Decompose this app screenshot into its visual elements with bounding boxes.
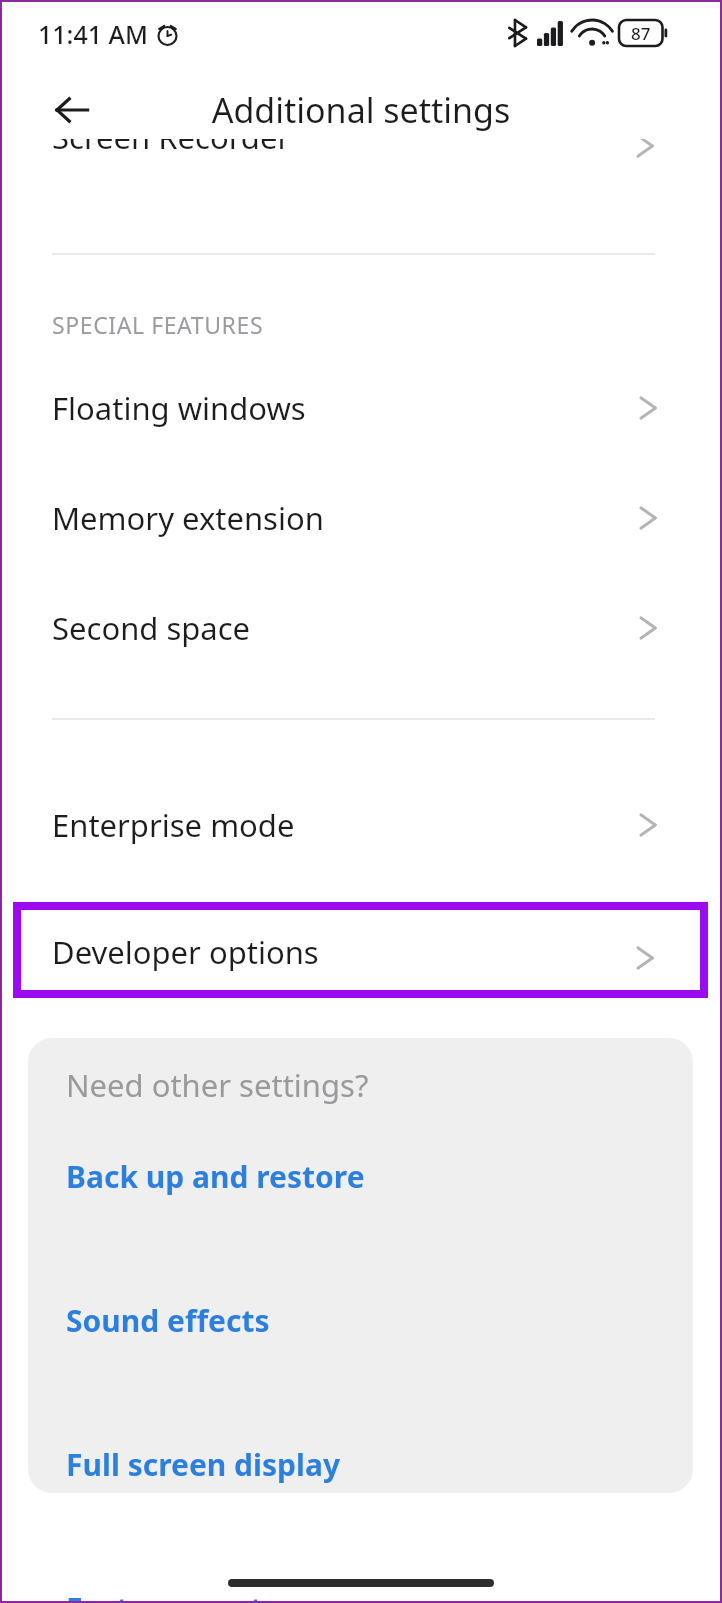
staticText: Enterprise mode: [52, 804, 295, 846]
button[interactable]: Screen Recorder: [0, 139, 722, 181]
button[interactable]: Developer options: [13, 902, 708, 998]
staticText: Floating windows: [52, 387, 306, 429]
button[interactable]: Floating windows: [0, 359, 722, 457]
staticText: 87: [631, 22, 651, 45]
staticText: Developer options: [52, 931, 319, 973]
button[interactable]: Factory reset: [66, 1577, 263, 1603]
button[interactable]: Back up and restore: [66, 1145, 365, 1207]
staticText: Need other settings?: [66, 1064, 369, 1106]
staticText: Memory extension: [52, 497, 324, 539]
staticText: Second space: [52, 607, 251, 649]
button[interactable]: Full screen display: [66, 1433, 341, 1495]
staticText: 11:41 AM: [38, 17, 148, 51]
staticText: Additional settings: [0, 87, 722, 133]
button[interactable]: Sound effects: [66, 1289, 270, 1351]
staticText: Factory reset: [66, 1588, 263, 1603]
button[interactable]: Memory extension: [0, 469, 722, 567]
staticText: Sound effects: [66, 1300, 270, 1341]
button[interactable]: Back: [44, 82, 100, 138]
staticText: Back up and restore: [66, 1156, 365, 1197]
staticText: Screen Recorder: [52, 139, 291, 158]
staticText: SPECIAL FEATURES: [52, 309, 264, 340]
staticText: Full screen display: [66, 1444, 341, 1485]
button[interactable]: Enterprise mode: [0, 776, 722, 874]
button[interactable]: Second space: [0, 579, 722, 677]
